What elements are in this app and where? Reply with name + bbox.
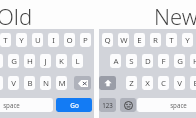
button[interactable]: G [8, 54, 19, 68]
button[interactable]: E [134, 33, 145, 47]
staticText: N [43, 78, 49, 89]
staticText: Y [19, 35, 24, 46]
staticText: T [169, 35, 174, 46]
button[interactable]: N [40, 76, 51, 90]
staticText: New [154, 1, 196, 31]
staticText: D [145, 56, 151, 67]
staticText: I [52, 35, 55, 46]
button[interactable]: Y [182, 33, 193, 47]
button[interactable]: Emoji [120, 98, 136, 112]
button[interactable]: U [32, 33, 43, 47]
button[interactable]: T [166, 33, 177, 47]
button[interactable]: space [0, 98, 53, 112]
staticText: A [113, 56, 119, 67]
button[interactable]: C [158, 76, 169, 90]
button[interactable]: V [8, 76, 19, 90]
staticText: V [177, 78, 182, 89]
staticText: E [137, 35, 142, 46]
staticText: Q [104, 35, 111, 46]
button[interactable]: G [174, 54, 185, 68]
staticText: S [129, 56, 134, 67]
button[interactable]: L [72, 54, 83, 68]
staticText: F [161, 56, 166, 67]
button[interactable]: K [56, 54, 67, 68]
button[interactable]: O [64, 33, 75, 47]
staticText: V [11, 78, 16, 89]
staticText: M [58, 78, 66, 89]
staticText: H [27, 56, 33, 67]
button[interactable]: Z [126, 76, 137, 90]
button[interactable]: I [48, 33, 59, 47]
button[interactable]: R [150, 33, 161, 47]
button[interactable]: H [24, 54, 35, 68]
button[interactable]: F [0, 54, 3, 68]
staticText: G [177, 56, 183, 67]
staticText: 123 [102, 101, 113, 109]
button[interactable]: J [40, 54, 51, 68]
button[interactable]: D [142, 54, 153, 68]
staticText: P [83, 35, 88, 46]
button[interactable]: Shift [99, 76, 116, 90]
staticText: C [161, 78, 166, 89]
button[interactable]: W [118, 33, 129, 47]
staticText: Y [185, 35, 190, 46]
button[interactable]: Backspace [74, 76, 91, 90]
staticText: K [59, 56, 64, 67]
button[interactable]: A [110, 54, 121, 68]
staticText: O [66, 35, 73, 46]
button[interactable]: F [158, 54, 169, 68]
button[interactable]: T [0, 33, 11, 47]
button[interactable]: V [174, 76, 185, 90]
button[interactable]: 123 [99, 98, 116, 112]
button[interactable]: P [80, 33, 91, 47]
button[interactable]: X [142, 76, 153, 90]
button[interactable]: Go [56, 98, 92, 112]
staticText: U [35, 35, 41, 46]
staticText: L [75, 56, 80, 67]
button[interactable]: B [190, 76, 196, 90]
staticText: W [120, 35, 128, 46]
staticText: T [3, 35, 8, 46]
staticText: Z [129, 78, 134, 89]
staticText: H [193, 56, 196, 67]
staticText: Go [70, 101, 79, 110]
button[interactable]: Y [16, 33, 27, 47]
staticText: space [3, 101, 20, 109]
staticText: X [145, 78, 150, 89]
staticText: B [193, 78, 196, 89]
staticText: G [11, 56, 17, 67]
staticText: Old [0, 1, 33, 31]
staticText: R [153, 35, 158, 46]
staticText: space [170, 101, 187, 109]
staticText: J [44, 56, 47, 67]
button[interactable]: M [56, 76, 67, 90]
button[interactable]: Q [102, 33, 113, 47]
staticText: B [27, 78, 33, 89]
button[interactable]: C [0, 76, 3, 90]
button[interactable]: S [126, 54, 137, 68]
button[interactable]: space [137, 98, 196, 112]
button[interactable]: H [190, 54, 196, 68]
button[interactable]: B [24, 76, 35, 90]
